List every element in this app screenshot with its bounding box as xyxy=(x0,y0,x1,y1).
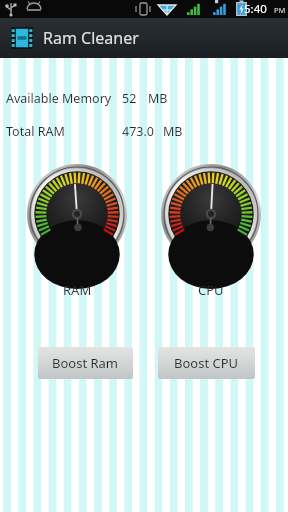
staticText: 473.0 xyxy=(122,123,154,139)
staticText: 52 xyxy=(122,90,137,106)
staticText: MB xyxy=(163,123,183,139)
staticText: Ram Cleaner xyxy=(43,27,139,49)
button[interactable]: CPU usage gauge xyxy=(161,164,261,264)
staticText: MB xyxy=(148,90,168,106)
button[interactable]: Boost CPU xyxy=(158,347,255,379)
staticText: Available Memory xyxy=(6,90,112,106)
staticText: 5:40 xyxy=(244,1,267,17)
staticText: Boost Ram xyxy=(52,354,119,372)
staticText: PM xyxy=(274,5,286,15)
button[interactable]: RAM usage gauge xyxy=(27,164,127,264)
staticText: CPU xyxy=(198,281,224,299)
staticText: Boost CPU xyxy=(174,354,239,372)
staticText: Total RAM xyxy=(6,123,65,139)
button[interactable]: Boost Ram xyxy=(38,347,133,379)
staticText: RAM xyxy=(63,281,92,299)
